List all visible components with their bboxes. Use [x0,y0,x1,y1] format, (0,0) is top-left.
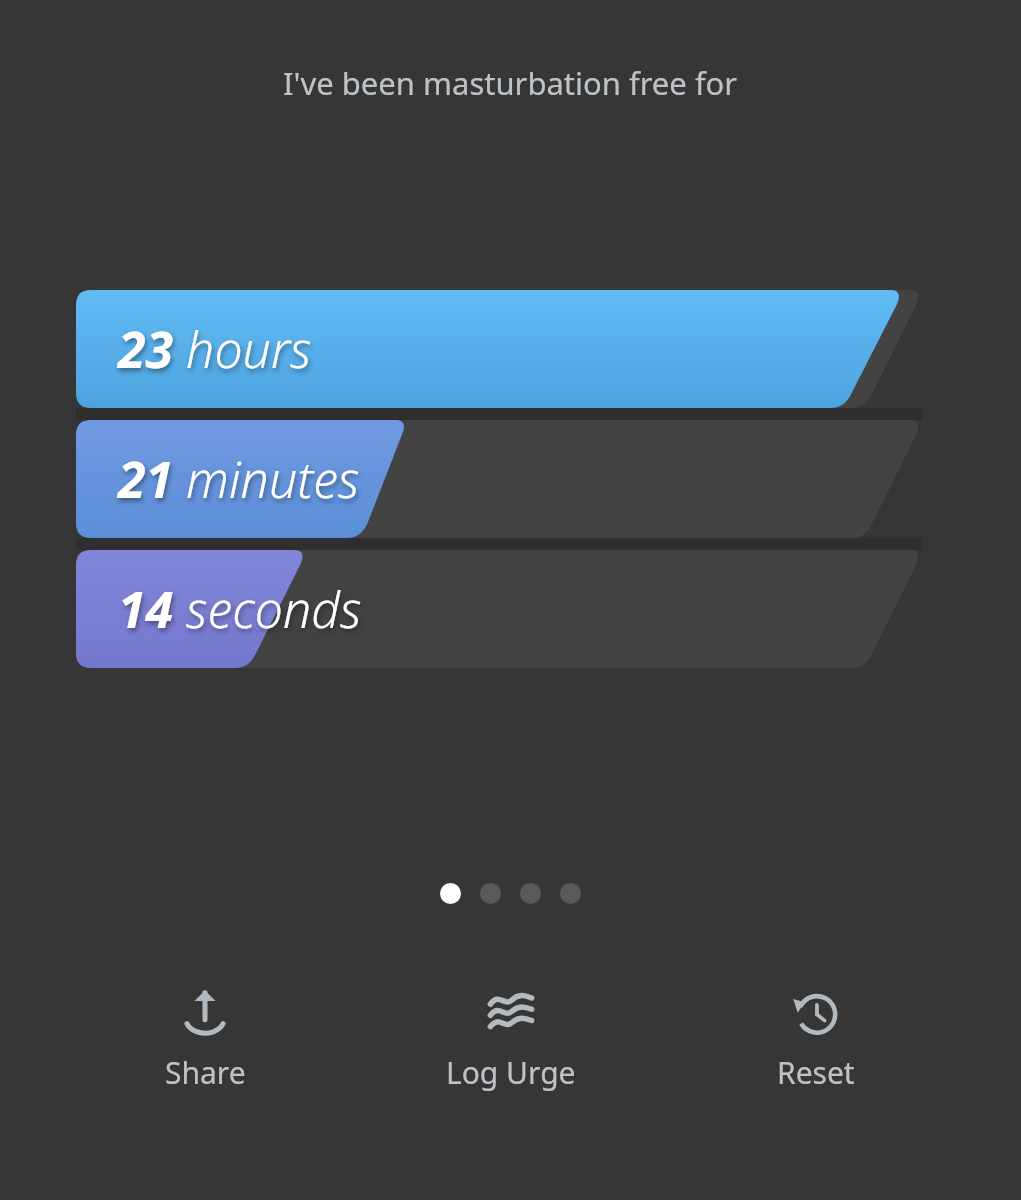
staticText: Log Urge [446,1052,576,1093]
button[interactable]: 21 minutes [76,420,922,538]
button[interactable] [520,883,541,904]
button[interactable]: Reset [716,982,916,1099]
button[interactable] [440,883,461,904]
staticText: I've been masturbation free for [283,62,738,104]
button[interactable] [480,883,501,904]
button[interactable]: 14 seconds [76,550,922,668]
staticText: 14 seconds [118,575,362,643]
staticText: 21 minutes [118,445,360,513]
staticText: Reset [777,1052,855,1093]
staticText: 23 hours [118,315,312,383]
button[interactable]: Share [105,982,305,1099]
button[interactable]: Log Urge [411,982,611,1099]
staticText: Share [165,1052,246,1093]
button[interactable] [560,883,581,904]
button[interactable]: 23 hours [76,290,922,408]
